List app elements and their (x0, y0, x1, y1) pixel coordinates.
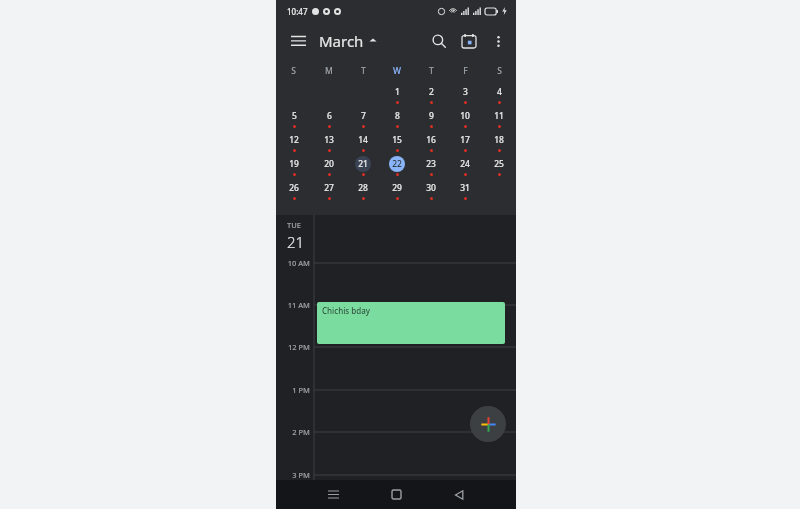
staticText: 7 (361, 110, 366, 122)
staticText: 4 (497, 86, 502, 98)
button[interactable]: Search (424, 26, 454, 56)
button[interactable]: 6 (321, 108, 337, 132)
staticText: 3 (463, 86, 468, 98)
button[interactable]: 24 (457, 156, 473, 180)
button[interactable]: 4 (491, 84, 507, 108)
staticText: 21 (358, 158, 368, 170)
button[interactable]: Open navigation menu (284, 27, 312, 55)
staticText: 17 (460, 134, 470, 146)
staticText: 9 (429, 110, 434, 122)
staticText: 30 (426, 182, 436, 194)
button[interactable]: 20 (321, 156, 337, 180)
button[interactable]: 28 (355, 180, 371, 204)
staticText: 12 (289, 134, 299, 146)
button[interactable]: 1 (389, 84, 405, 108)
staticText: 11 (494, 110, 504, 122)
staticText: 23 (426, 158, 436, 170)
button[interactable]: Create new event (470, 406, 506, 442)
button[interactable]: 5 (286, 108, 302, 132)
button[interactable]: 2 (423, 84, 439, 108)
staticText: 8 (395, 110, 400, 122)
staticText: 26 (289, 182, 299, 194)
button[interactable]: Home (381, 480, 411, 509)
staticText: TUE (287, 220, 301, 230)
staticText: 11 AM (287, 300, 310, 310)
staticText: 12 PM (288, 342, 310, 352)
button[interactable]: 16 (423, 132, 439, 156)
button[interactable]: 14 (355, 132, 371, 156)
staticText: 3 PM (292, 470, 310, 480)
staticText: 16 (426, 134, 436, 146)
staticText: 1 PM (292, 385, 310, 395)
button[interactable]: 3 (457, 84, 473, 108)
staticText: 25 (494, 158, 504, 170)
button[interactable]: 27 (321, 180, 337, 204)
staticText: T (361, 65, 366, 77)
staticText: S (497, 65, 502, 77)
button[interactable]: 21 (355, 156, 371, 180)
staticText: 1 (395, 86, 400, 98)
staticText: 19 (289, 158, 299, 170)
button[interactable]: 25 (491, 156, 507, 180)
button[interactable]: 18 (491, 132, 507, 156)
staticText: 2 PM (292, 427, 310, 437)
button[interactable]: Recent apps (318, 480, 348, 509)
button[interactable]: 22 (389, 156, 405, 180)
button[interactable]: 30 (423, 180, 439, 204)
staticText: 22 (392, 158, 402, 170)
button[interactable]: 13 (321, 132, 337, 156)
button[interactable]: March (317, 31, 379, 51)
staticText: 10 (460, 110, 470, 122)
staticText: 5 (292, 110, 297, 122)
button[interactable]: 17 (457, 132, 473, 156)
staticText: 24 (460, 158, 470, 170)
button[interactable]: 7 (355, 108, 371, 132)
button[interactable]: 26 (286, 180, 302, 204)
button[interactable]: 8 (389, 108, 405, 132)
staticText: 21 (287, 232, 305, 252)
button[interactable]: 19 (286, 156, 302, 180)
button[interactable]: 15 (389, 132, 405, 156)
button[interactable]: 11 (491, 108, 507, 132)
staticText: Chichis bday (322, 305, 371, 316)
button[interactable]: Back (444, 480, 474, 509)
staticText: W (393, 65, 401, 77)
staticText: F (463, 65, 468, 77)
staticText: 28 (358, 182, 368, 194)
staticText: 14 (358, 134, 368, 146)
button[interactable]: 9 (423, 108, 439, 132)
staticText: 13 (324, 134, 334, 146)
staticText: 6 (327, 110, 332, 122)
staticText: 2 (429, 86, 434, 98)
staticText: M (325, 65, 333, 77)
button[interactable]: 10 (457, 108, 473, 132)
staticText: S (291, 65, 296, 77)
staticText: March (319, 31, 364, 51)
button[interactable]: 31 (457, 180, 473, 204)
staticText: 10 AM (287, 258, 310, 268)
staticText: 31 (460, 182, 470, 194)
staticText: 29 (392, 182, 402, 194)
button[interactable]: 23 (423, 156, 439, 180)
staticText: 15 (392, 134, 402, 146)
staticText: 20 (324, 158, 334, 170)
staticText: 27 (324, 182, 334, 194)
button[interactable]: More options (484, 27, 512, 55)
staticText: 10:47 (287, 6, 308, 17)
button[interactable]: 12 (286, 132, 302, 156)
staticText: T (429, 65, 434, 77)
button[interactable]: Go to today (454, 26, 484, 56)
button[interactable]: 29 (389, 180, 405, 204)
staticText: 18 (494, 134, 504, 146)
button[interactable]: Chichis bday (317, 302, 505, 344)
